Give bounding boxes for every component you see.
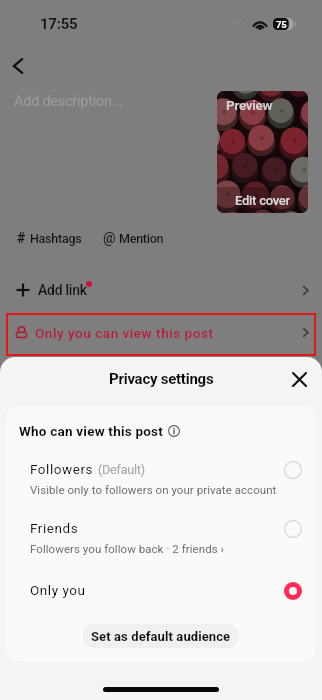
button[interactable]: Set as default audience (83, 624, 239, 648)
staticText: # (17, 230, 26, 246)
staticText: (Default) (98, 462, 145, 477)
button[interactable]: Back (1, 49, 35, 83)
staticText: Only you (30, 582, 86, 598)
button[interactable]: @ (99, 226, 168, 250)
staticText: Add description... (14, 93, 123, 110)
staticText: Edit cover (235, 193, 290, 208)
staticText: Only you can view this post (35, 325, 214, 341)
button[interactable]: Followers (6, 447, 316, 504)
staticText: Followers (30, 461, 94, 477)
button[interactable]: Close (284, 364, 314, 394)
button[interactable]: Friends (6, 506, 316, 563)
staticText: Followers you follow back · 2 friends › (30, 542, 225, 555)
staticText: Hashtags (30, 231, 82, 246)
button[interactable]: Edit cover (217, 187, 308, 213)
button[interactable]: Add link (0, 272, 322, 308)
staticText: Mention (119, 231, 164, 246)
staticText: Friends (30, 520, 79, 536)
staticText: 75 (276, 19, 287, 30)
staticText: Privacy settings (109, 370, 214, 388)
staticText: @ (103, 230, 116, 246)
staticText: 17:55 (40, 15, 78, 33)
staticText: Visible only to followers on your privat… (30, 483, 277, 496)
staticText: Set as default audience (91, 629, 231, 644)
button[interactable]: Only you (6, 573, 316, 617)
button[interactable]: # (13, 226, 86, 250)
staticText: Add link (38, 282, 87, 298)
staticText: Who can view this post (19, 423, 164, 439)
staticText: Preview (226, 97, 273, 113)
button[interactable]: Only you can view this post (6, 313, 316, 356)
